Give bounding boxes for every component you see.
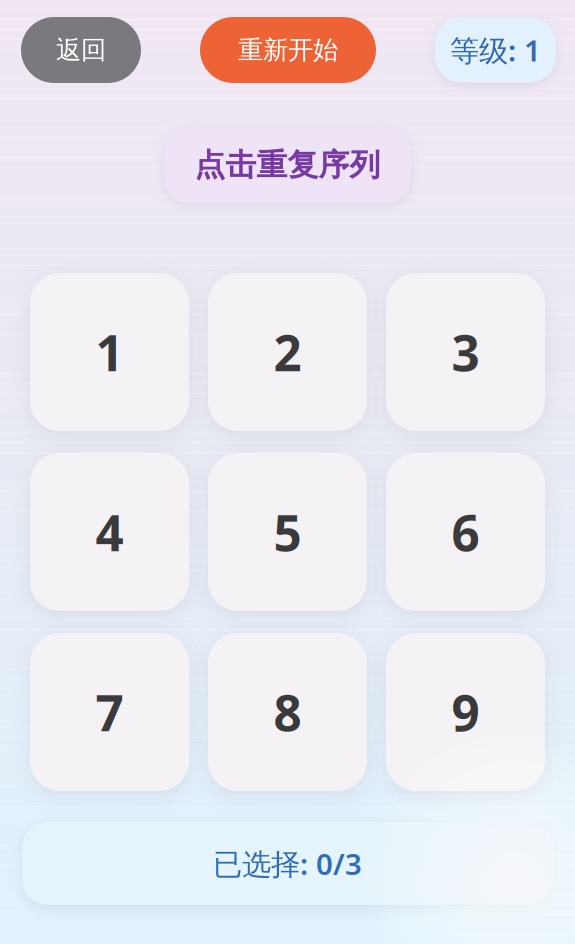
staticText: 3 <box>451 319 479 385</box>
button[interactable]: 8 <box>208 633 367 791</box>
staticText: 5 <box>273 499 301 565</box>
staticText: 8 <box>273 679 301 745</box>
button[interactable]: 6 <box>386 453 545 611</box>
button[interactable]: 9 <box>386 633 545 791</box>
staticText: 等级: 1 <box>450 30 541 69</box>
staticText: 返回 <box>56 34 106 65</box>
staticText: 4 <box>95 499 123 565</box>
staticText: 6 <box>451 499 479 565</box>
staticText: 9 <box>451 679 479 745</box>
button[interactable]: 3 <box>386 273 545 431</box>
button[interactable]: 1 <box>30 273 189 431</box>
button[interactable]: 返回 <box>21 17 141 83</box>
staticText: 重新开始 <box>238 34 338 65</box>
button[interactable]: 7 <box>30 633 189 791</box>
button[interactable]: 4 <box>30 453 189 611</box>
staticText: 7 <box>95 679 123 745</box>
button[interactable]: 5 <box>208 453 367 611</box>
staticText: 1 <box>95 319 123 385</box>
button[interactable]: 重新开始 <box>200 17 376 83</box>
staticText: 已选择: 0/3 <box>213 844 362 883</box>
button[interactable]: 2 <box>208 273 367 431</box>
staticText: 2 <box>273 319 301 385</box>
staticText: 点击重复序列 <box>194 146 380 184</box>
